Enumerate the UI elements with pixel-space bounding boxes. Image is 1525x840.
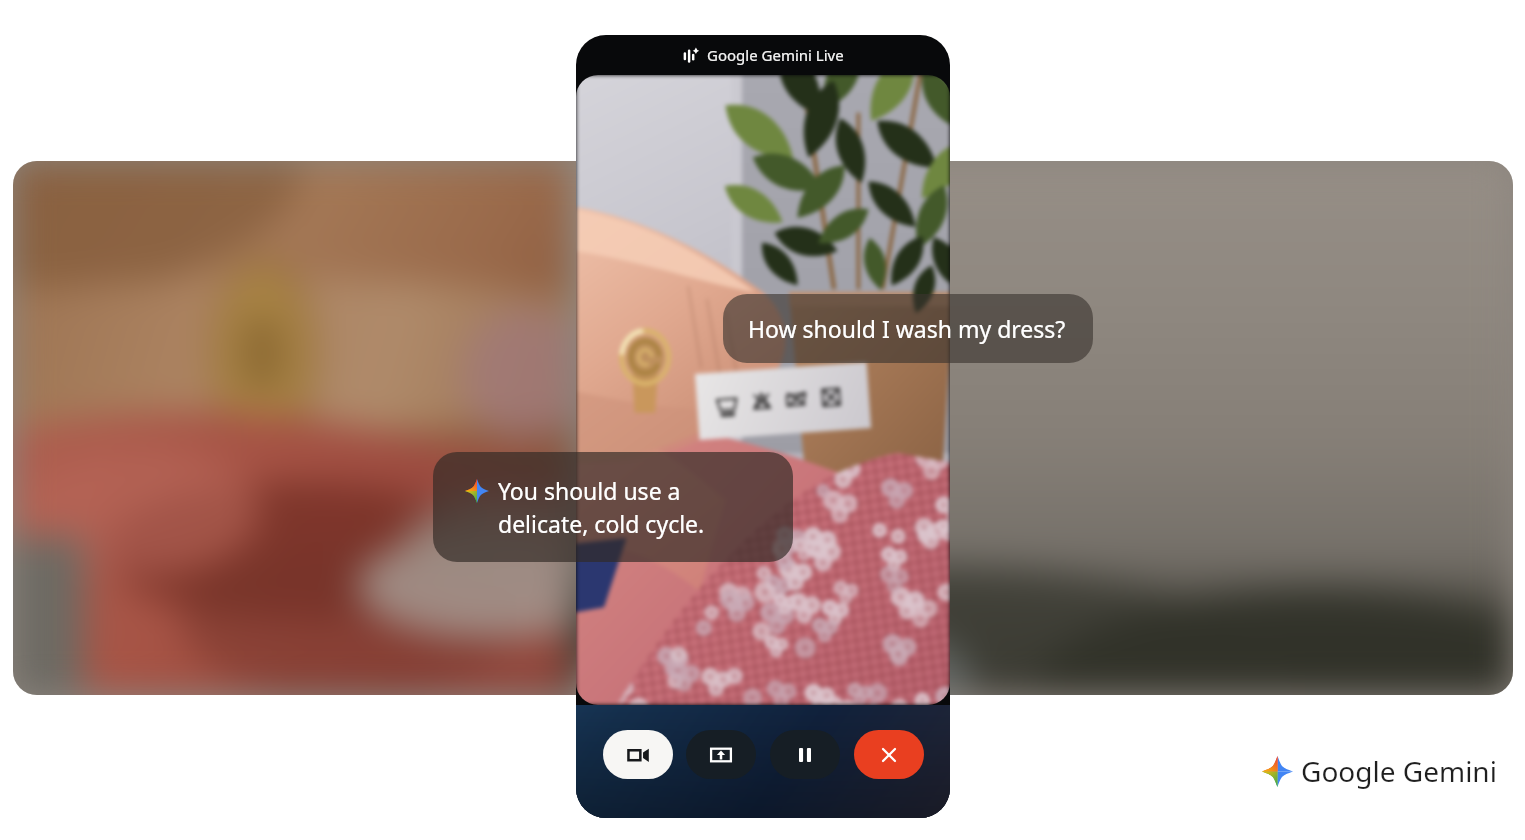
staticText: How should I wash my dress?: [748, 313, 1066, 344]
staticText: You should use a delicate, cold cycle.: [498, 475, 705, 540]
button[interactable]: Camera: [603, 730, 673, 779]
button[interactable]: How should I wash my dress?: [723, 294, 1093, 363]
button[interactable]: Pause: [770, 730, 840, 779]
button[interactable]: Share screen: [686, 730, 756, 779]
button[interactable]: Google Gemini: [1262, 752, 1497, 790]
button[interactable]: End session: [854, 730, 924, 779]
button[interactable]: You should use a delicate, cold cycle.: [433, 452, 793, 562]
staticText: Google Gemini: [1301, 752, 1497, 790]
staticText: Google Gemini Live: [707, 45, 844, 65]
